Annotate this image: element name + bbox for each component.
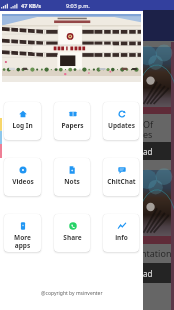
staticText: es (143, 128, 153, 140)
button[interactable]: Share (54, 214, 90, 252)
button[interactable]: info (103, 214, 139, 252)
button[interactable]: Videos (4, 158, 41, 196)
staticText: Papers (61, 121, 84, 130)
staticText: info (115, 233, 128, 242)
staticText: 9:03 p.m. (66, 2, 90, 9)
button[interactable]: Log In (4, 102, 41, 140)
staticText: ChitChat (107, 177, 136, 186)
staticText: Log In (12, 121, 33, 130)
staticText: Share (63, 233, 82, 242)
button[interactable]: Updates (103, 102, 139, 140)
staticText: ntation & (141, 247, 174, 259)
staticText: Videos (12, 177, 34, 186)
staticText: ad (143, 268, 153, 279)
staticText: Of (143, 118, 154, 130)
staticText: ad (143, 146, 153, 157)
button[interactable]: More apps (4, 214, 41, 252)
staticText: More apps (14, 233, 31, 250)
button[interactable]: Nots (54, 158, 90, 196)
staticText: 47 KB/s (21, 2, 42, 9)
staticText: Updates (108, 121, 135, 130)
staticText: Nots (64, 177, 80, 186)
button[interactable]: ChitChat (103, 158, 139, 196)
staticText: @copyright by msinventer (41, 290, 103, 297)
button[interactable]: Papers (54, 102, 90, 140)
